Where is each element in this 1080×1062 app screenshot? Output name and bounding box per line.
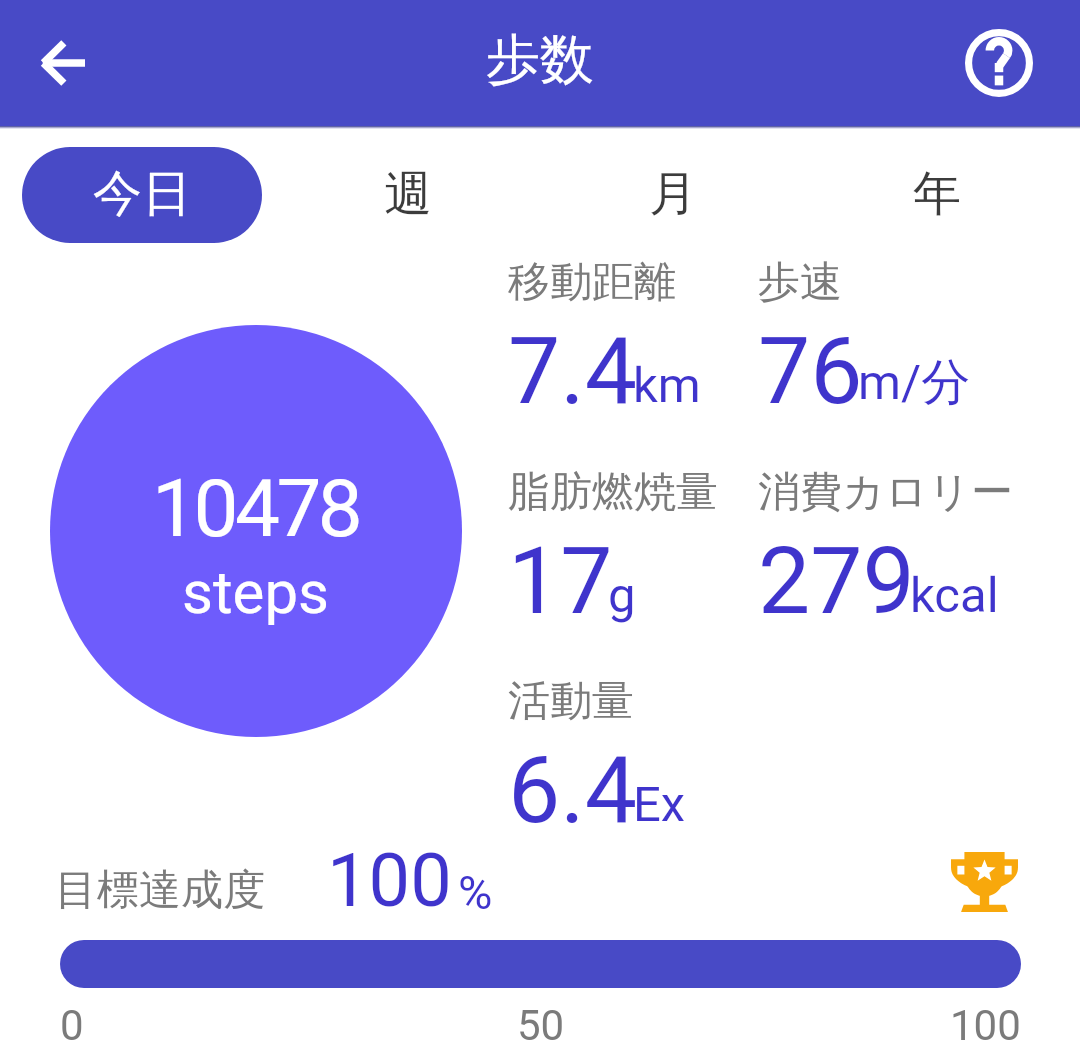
button[interactable]: Back bbox=[20, 20, 106, 106]
staticText: 今日 bbox=[93, 163, 191, 225]
staticText: 脂肪燃焼量 bbox=[508, 466, 718, 519]
button[interactable]: 今日 bbox=[22, 147, 262, 243]
staticText: 歩速 bbox=[758, 256, 842, 309]
staticText: 月 bbox=[649, 164, 697, 224]
staticText: 100 bbox=[950, 1001, 1021, 1050]
staticText: 6.4 bbox=[508, 736, 638, 845]
staticText: 76 bbox=[758, 317, 863, 426]
staticText: 0 bbox=[60, 1001, 84, 1050]
button[interactable]: 週 bbox=[348, 147, 468, 243]
staticText: 歩数 bbox=[486, 26, 594, 94]
staticText: g bbox=[608, 567, 636, 624]
staticText: 279 bbox=[758, 527, 915, 636]
button[interactable]: 年 bbox=[877, 147, 997, 243]
staticText: % bbox=[458, 865, 493, 920]
staticText: 消費カロリー bbox=[758, 466, 1013, 519]
staticText: 移動距離 bbox=[508, 256, 676, 309]
staticText: 7.4 bbox=[508, 317, 638, 426]
button[interactable]: Steps today bbox=[50, 325, 462, 737]
staticText: steps bbox=[182, 557, 330, 627]
staticText: 100 bbox=[327, 837, 452, 921]
button[interactable]: Goal achieved bbox=[936, 840, 1032, 924]
staticText: 年 bbox=[913, 164, 961, 224]
staticText: kcal bbox=[910, 567, 999, 624]
staticText: 50 bbox=[517, 1001, 565, 1050]
staticText: 活動量 bbox=[508, 675, 634, 728]
staticText: Ex bbox=[633, 776, 686, 833]
button[interactable]: 月 bbox=[613, 147, 733, 243]
button[interactable]: Help bbox=[956, 20, 1042, 106]
staticText: 目標達成度 bbox=[55, 864, 265, 917]
staticText: m/分 bbox=[858, 352, 971, 414]
staticText: 週 bbox=[384, 164, 432, 224]
staticText: 10478 bbox=[152, 462, 360, 556]
staticText: km bbox=[633, 357, 701, 414]
staticText: 17 bbox=[508, 527, 613, 636]
